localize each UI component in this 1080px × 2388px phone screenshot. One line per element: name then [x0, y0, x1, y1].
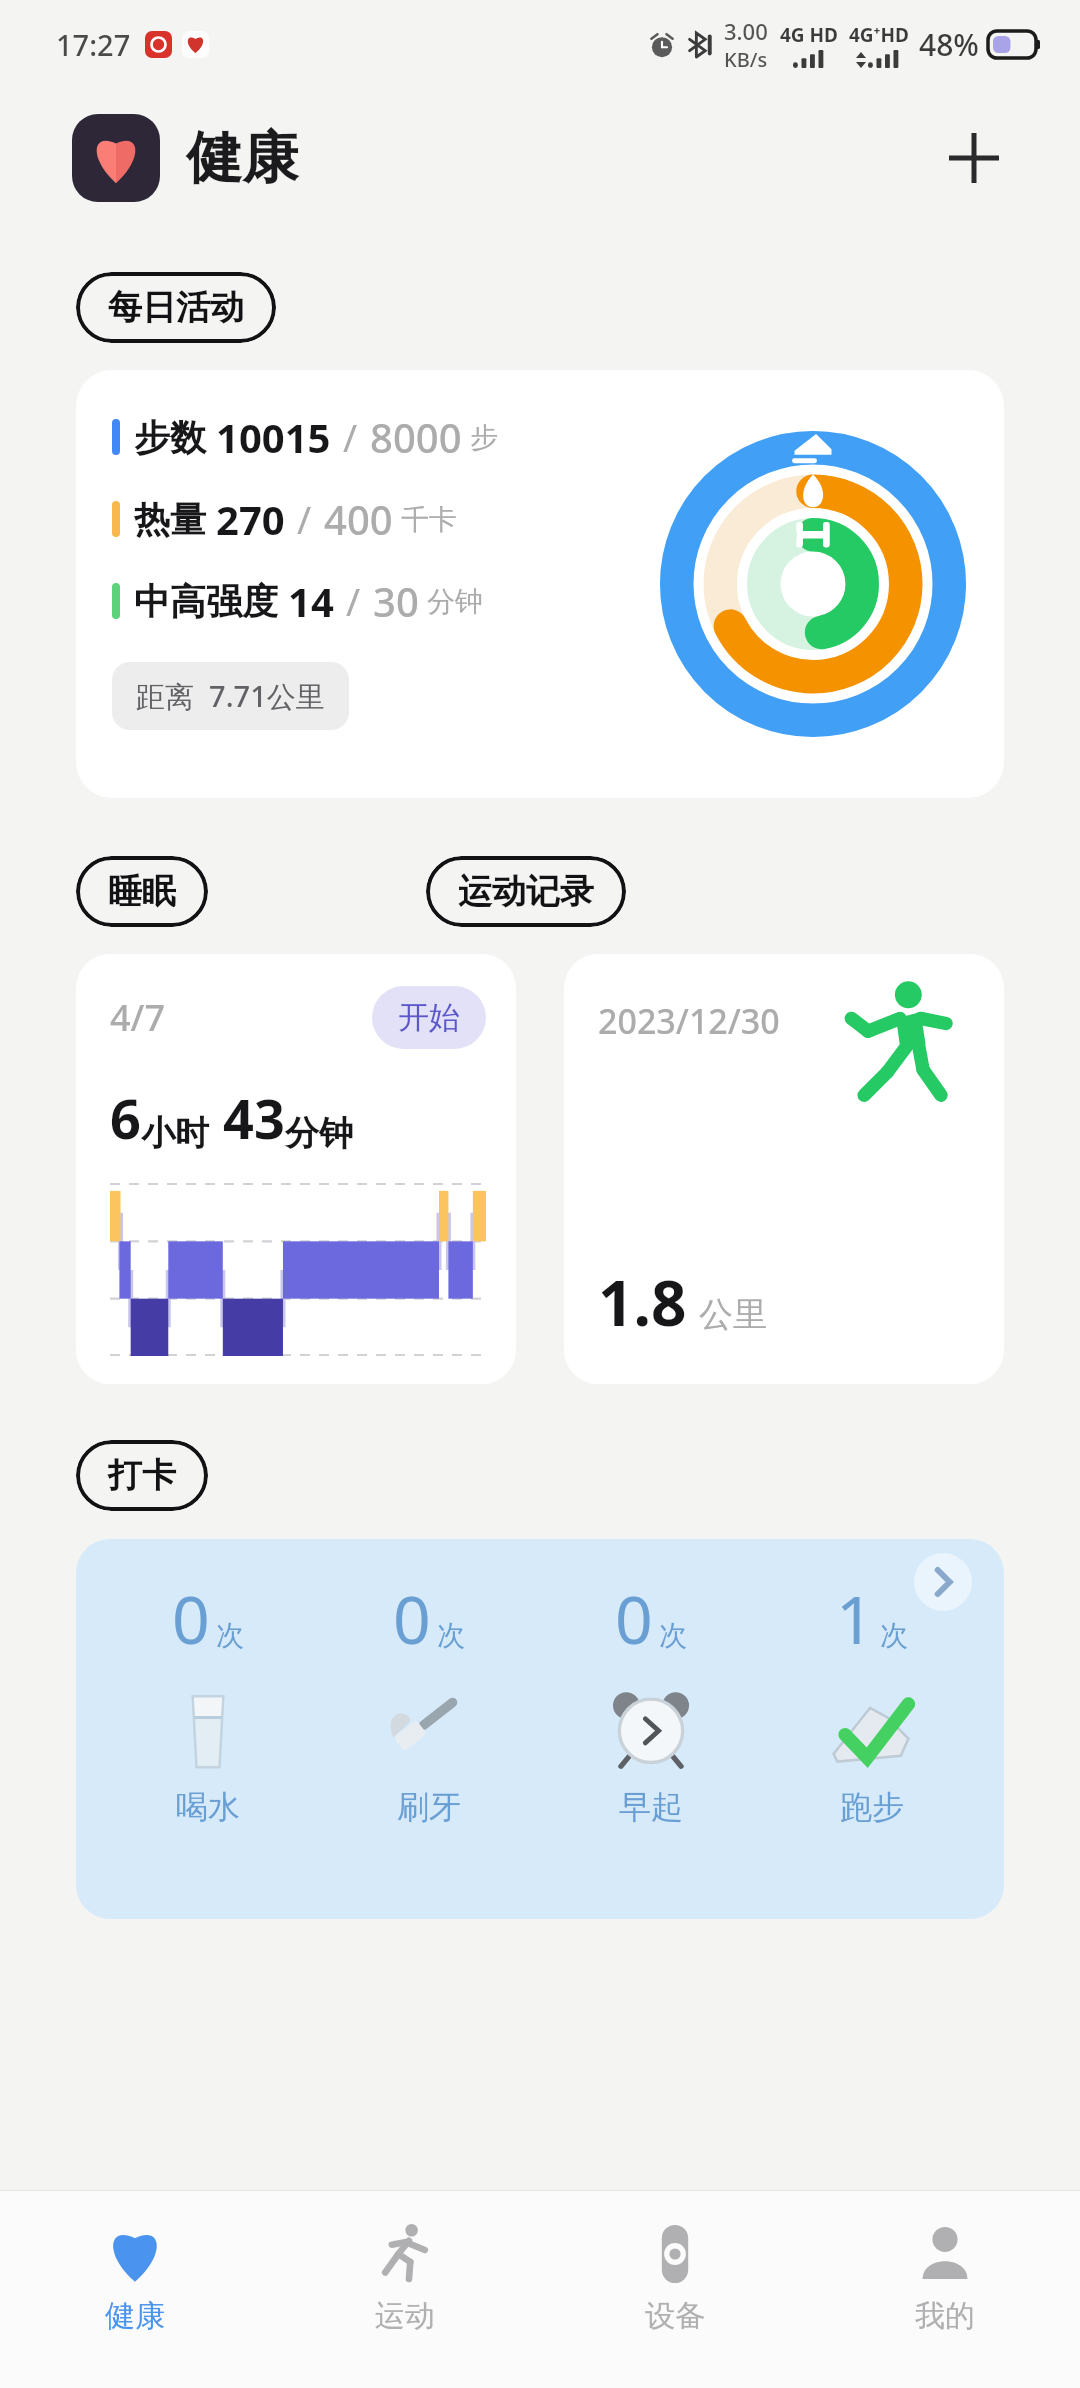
staticText: 43: [223, 1081, 285, 1155]
staticText: 1.8: [598, 1260, 687, 1344]
staticText: KB/s: [724, 46, 768, 73]
staticText: 健康: [186, 123, 298, 194]
staticText: 3.00: [724, 16, 768, 46]
staticText: 打卡: [108, 1454, 176, 1497]
staticText: 步数: [134, 415, 206, 460]
staticText: /: [297, 493, 312, 545]
staticText: 公里: [699, 1293, 767, 1336]
button[interactable]: 睡眠: [76, 856, 208, 927]
staticText: 千卡: [401, 502, 457, 537]
button[interactable]: 打卡: [76, 1440, 208, 1511]
staticText: 分钟: [427, 584, 483, 619]
staticText: 8000: [370, 410, 462, 464]
button[interactable]: 0: [76, 1539, 1004, 1919]
staticText: 4G⁺HD: [849, 22, 909, 48]
button[interactable]: 设备: [540, 2191, 810, 2388]
button[interactable]: 健康: [0, 2191, 270, 2388]
button[interactable]: 开始: [372, 986, 486, 1049]
staticText: 每日活动: [108, 286, 244, 329]
button[interactable]: Add: [936, 120, 1012, 196]
button[interactable]: More: [914, 1553, 972, 1611]
staticText: 距离 7.71公里: [136, 676, 325, 716]
staticText: 睡眠: [108, 870, 176, 913]
staticText: 2023/12/30: [598, 998, 780, 1044]
button[interactable]: 我的: [810, 2191, 1080, 2388]
staticText: 小时: [141, 1112, 209, 1155]
staticText: 开始: [398, 998, 460, 1037]
staticText: 步: [470, 420, 498, 455]
staticText: 1: [836, 1573, 874, 1663]
staticText: 设备: [645, 2297, 705, 2335]
staticText: 热量: [134, 497, 206, 542]
staticText: 分钟: [285, 1112, 353, 1155]
staticText: 次: [216, 1618, 244, 1653]
staticText: 4G HD: [780, 22, 839, 48]
staticText: 48%: [919, 24, 979, 65]
staticText: 10015: [216, 410, 331, 464]
staticText: 400: [324, 492, 393, 546]
staticText: 我的: [915, 2297, 975, 2335]
staticText: /: [343, 411, 358, 463]
staticText: 健康: [105, 2297, 165, 2335]
staticText: 0: [615, 1573, 653, 1663]
staticText: 早起: [619, 1787, 683, 1827]
staticText: 中高强度: [134, 579, 278, 624]
staticText: 270: [216, 492, 285, 546]
staticText: 14: [288, 574, 334, 628]
staticText: 4/7: [110, 993, 166, 1042]
button[interactable]: 0: [339, 1573, 519, 1827]
button[interactable]: 0: [561, 1573, 741, 1827]
button[interactable]: 距离 7.71公里: [112, 662, 349, 730]
staticText: 次: [880, 1618, 908, 1653]
staticText: 17:27: [56, 25, 131, 64]
staticText: 运动记录: [458, 870, 594, 913]
staticText: 30: [373, 574, 419, 628]
staticText: /: [346, 575, 361, 627]
staticText: 运动: [375, 2297, 435, 2335]
staticText: 喝水: [176, 1787, 240, 1827]
staticText: 次: [659, 1618, 687, 1653]
staticText: 0: [393, 1573, 431, 1663]
button[interactable]: 运动: [270, 2191, 540, 2388]
button[interactable]: 运动记录: [426, 856, 626, 927]
staticText: 6: [110, 1081, 141, 1155]
staticText: 刷牙: [397, 1787, 461, 1827]
button[interactable]: 每日活动: [76, 272, 276, 343]
button[interactable]: 2023/12/30: [564, 954, 1004, 1384]
button[interactable]: 1: [782, 1573, 962, 1827]
staticText: 次: [437, 1618, 465, 1653]
staticText: 跑步: [840, 1787, 904, 1827]
button[interactable]: 4/7: [76, 954, 516, 1384]
button[interactable]: 0: [118, 1573, 298, 1827]
staticText: 0: [172, 1573, 210, 1663]
button[interactable]: 步数: [76, 370, 1004, 798]
